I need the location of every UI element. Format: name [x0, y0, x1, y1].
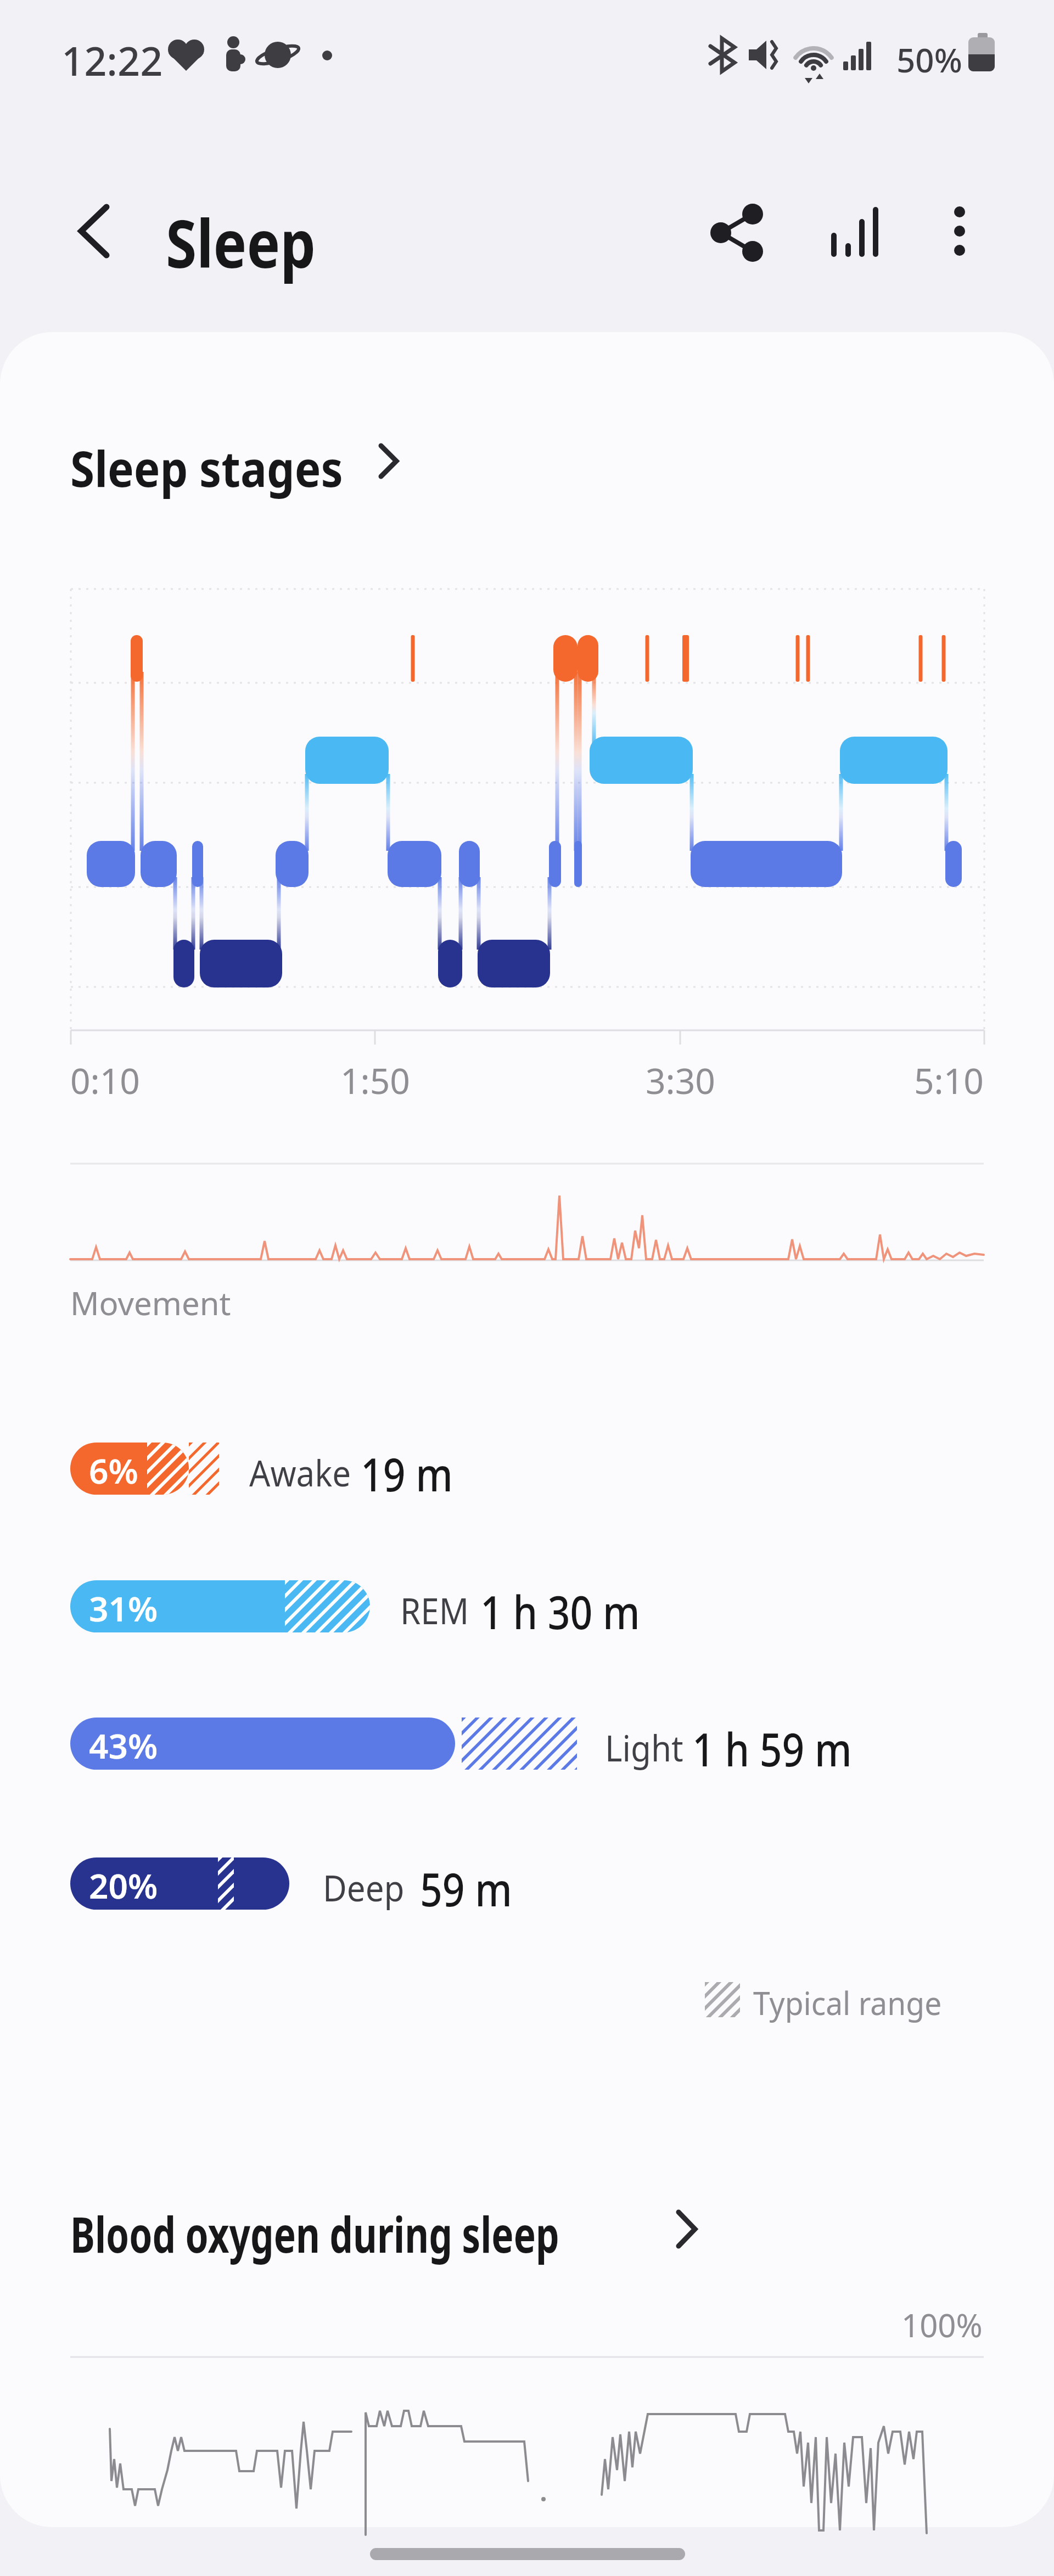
- staticText: 43%: [89, 1722, 158, 1769]
- button[interactable]: [60, 423, 417, 494]
- button[interactable]: [60, 2190, 719, 2261]
- staticText: Deep: [323, 1862, 405, 1912]
- staticText: Sleep: [166, 198, 316, 287]
- button[interactable]: [925, 197, 996, 268]
- staticText: 50%: [896, 37, 962, 82]
- staticText: 59 m: [420, 1857, 512, 1920]
- button[interactable]: [819, 197, 890, 268]
- staticText: 1 h 30 m: [480, 1580, 640, 1642]
- staticText: REM: [400, 1585, 469, 1635]
- button[interactable]: [55, 195, 126, 266]
- staticText: Light: [605, 1722, 683, 1772]
- staticText: Blood oxygen during sleep: [70, 2200, 559, 2268]
- staticText: Awake: [249, 1447, 351, 1497]
- staticText: 0:10: [70, 1057, 140, 1104]
- staticText: Sleep stages: [70, 434, 343, 502]
- staticText: 5:10: [914, 1057, 984, 1104]
- staticText: 20%: [89, 1862, 158, 1909]
- button[interactable]: [703, 197, 774, 268]
- staticText: 6%: [89, 1447, 138, 1494]
- staticText: Typical range: [753, 1981, 942, 2024]
- staticText: 1 h 59 m: [692, 1717, 852, 1780]
- staticText: 3:30: [646, 1057, 715, 1104]
- staticText: 19 m: [361, 1442, 453, 1505]
- staticText: 100%: [901, 2303, 983, 2347]
- staticText: 31%: [89, 1585, 158, 1631]
- staticText: 12:22: [61, 33, 163, 87]
- staticText: 1:50: [340, 1057, 410, 1104]
- staticText: Movement: [70, 1281, 231, 1325]
